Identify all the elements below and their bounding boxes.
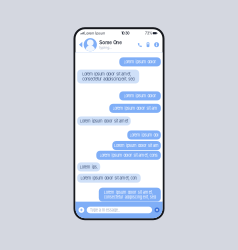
staticText: Lorem ipsum dolor sit amet, con. [80,176,137,180]
staticText: Lorem ipsum dolor sit amet, consectetur … [82,72,134,81]
staticText: Lorem ipsum dolor [123,59,156,64]
staticText: 73% [145,31,152,35]
button[interactable]: Send [154,207,159,212]
staticText: typing… [99,45,112,49]
button[interactable]: Type a message.. [87,207,152,213]
staticText: Lorem ips. [80,164,98,169]
staticText: Some One [99,40,122,45]
staticText: Type a message.. [90,207,120,212]
staticText: Lorem ipsum dolor sit amet, consectetur … [104,190,156,199]
button[interactable]: Call [137,42,142,47]
staticText: Lorem ipsum dolor sit am [114,143,159,148]
staticText: Lorem ipsum dolor sit am [112,106,157,111]
button[interactable]: Details [154,42,159,47]
button[interactable]: Some One [84,38,122,51]
staticText: Lorem ipsum dolor sit amet [80,118,128,123]
staticText: Lorem ipsum dol [130,133,159,137]
button[interactable]: Back [78,39,84,50]
button[interactable]: Add attachment [78,207,84,213]
button[interactable]: Video call [145,42,150,47]
staticText: 10:30 [121,31,129,35]
staticText: Lorem ipsum dolor [123,93,156,98]
staticText: Lorem Ipsum [84,31,105,35]
staticText: Lorem ipsum dolor sit amet, cons [99,153,157,158]
